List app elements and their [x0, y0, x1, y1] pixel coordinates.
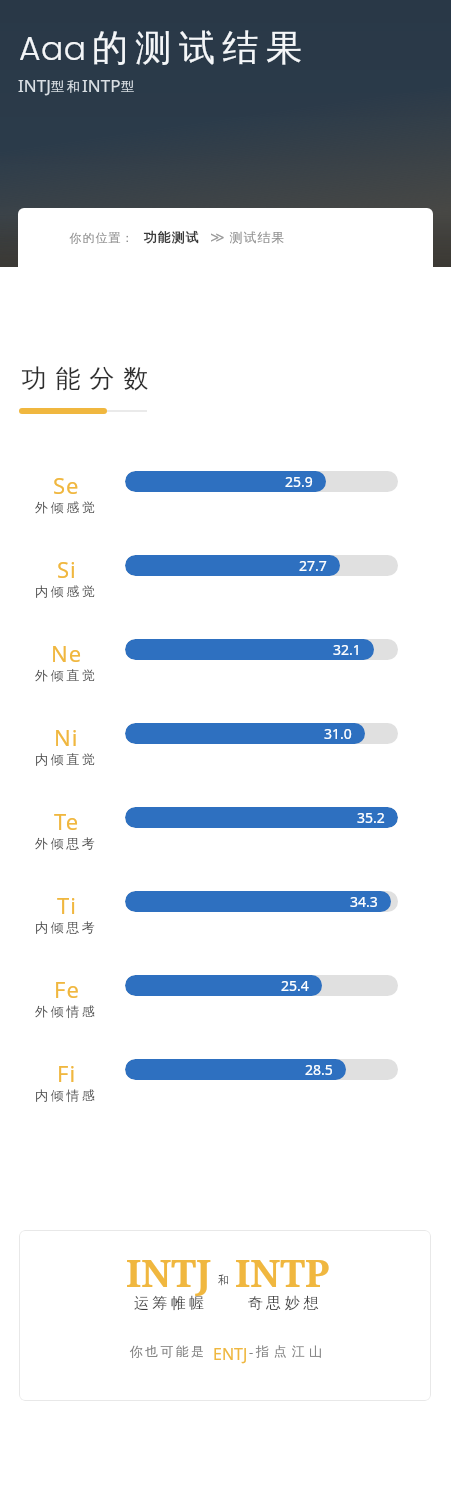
staticText: 你也可能是 — [129, 1343, 205, 1359]
button[interactable]: Si — [0, 523, 451, 607]
staticText: 运筹帷幄 — [132, 1294, 206, 1313]
staticText: 测试结果 — [229, 229, 285, 245]
button[interactable]: Ti — [0, 859, 451, 943]
staticText: 内倾思考 — [35, 919, 98, 935]
staticText: Te — [54, 806, 80, 836]
staticText: 功能测试 — [143, 229, 199, 245]
staticText: 内倾感觉 — [35, 583, 98, 599]
staticText: 奇思妙想 — [246, 1294, 320, 1313]
staticText: 25.9 — [285, 472, 313, 491]
staticText: 功能分数 — [17, 363, 153, 394]
staticText: Si — [57, 554, 77, 584]
staticText: Fe — [54, 974, 80, 1004]
staticText: ≫ — [210, 229, 225, 245]
staticText: Fi — [57, 1058, 77, 1088]
button[interactable]: Fi — [0, 1027, 451, 1111]
button[interactable]: Fe — [0, 943, 451, 1027]
staticText: 指点江山 — [256, 1343, 327, 1359]
staticText: 34.3 — [350, 892, 378, 911]
button[interactable]: Ne — [0, 607, 451, 691]
staticText: 型 — [121, 78, 134, 94]
staticText: INTP — [82, 74, 121, 97]
staticText: INTP — [235, 1246, 330, 1298]
staticText: 和 — [218, 1273, 229, 1287]
staticText: 32.1 — [333, 640, 361, 659]
staticText: 和 — [67, 78, 80, 94]
staticText: 31.0 — [324, 724, 352, 743]
staticText: 28.5 — [305, 1060, 333, 1079]
button[interactable]: INTJ — [19, 1230, 431, 1401]
staticText: 内倾情感 — [35, 1087, 98, 1103]
staticText: - — [249, 1343, 254, 1361]
staticText: 外倾直觉 — [35, 667, 98, 683]
button[interactable]: 你的位置： — [69, 229, 285, 245]
staticText: Ne — [51, 638, 83, 668]
staticText: Aaa — [19, 25, 87, 71]
staticText: 外倾思考 — [35, 835, 98, 851]
staticText: Ti — [57, 890, 77, 920]
staticText: 27.7 — [299, 556, 327, 575]
staticText: 型 — [51, 78, 64, 94]
staticText: INTJ — [126, 1246, 212, 1298]
staticText: Se — [53, 470, 80, 500]
staticText: 25.4 — [281, 976, 309, 995]
staticText: 你的位置： — [69, 230, 134, 245]
staticText: 内倾直觉 — [35, 751, 98, 767]
staticText: 外倾感觉 — [35, 499, 98, 515]
button[interactable]: Ni — [0, 691, 451, 775]
staticText: ENTJ — [213, 1343, 248, 1365]
button[interactable]: Te — [0, 775, 451, 859]
staticText: Ni — [54, 722, 79, 752]
staticText: 的测试结果 — [92, 25, 310, 70]
staticText: 35.2 — [357, 808, 385, 827]
staticText: 外倾情感 — [35, 1003, 98, 1019]
button[interactable]: Se — [0, 439, 451, 523]
staticText: INTJ — [18, 74, 51, 97]
